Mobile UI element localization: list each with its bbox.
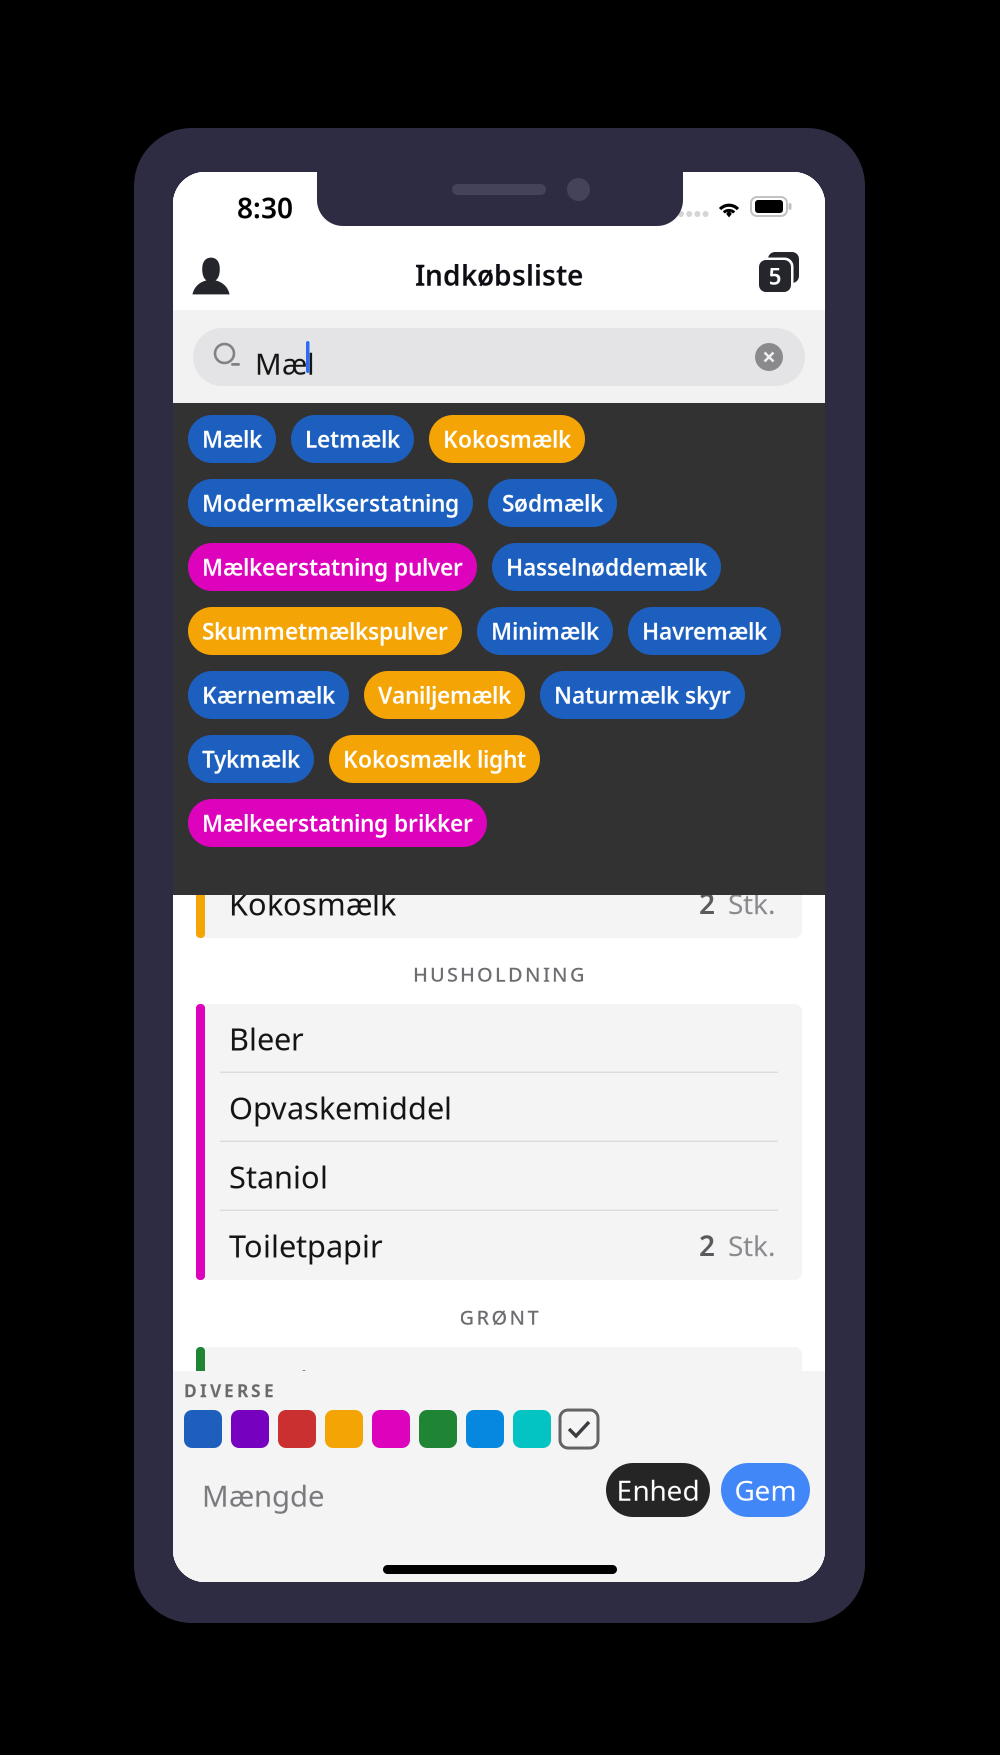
staticText: 5 — [768, 261, 781, 291]
button[interactable]: Mælkeerstatning brikker — [188, 799, 487, 847]
staticText: Kokosmælk — [443, 424, 571, 454]
staticText: Havremælk — [642, 616, 767, 646]
staticText: D I V E R S E — [184, 1379, 274, 1402]
staticText: Indkøbsliste — [415, 256, 583, 294]
button[interactable]: Farve — [466, 1410, 504, 1448]
staticText: Agurk — [229, 1361, 316, 1402]
staticText: K Ø L E V A R E R — [434, 391, 563, 417]
staticText: H U S H O L D N I N G — [413, 961, 585, 987]
staticText: Stk. — [728, 1227, 776, 1264]
staticText: Mælkeerstatning pulver — [202, 552, 463, 582]
button[interactable]: Naturmælk skyr — [540, 671, 745, 719]
button[interactable]: Vælg — [560, 1410, 598, 1448]
staticText: G R Ø N T — [459, 1304, 538, 1330]
button[interactable]: Farve — [184, 1410, 222, 1448]
button[interactable]: Hasselnøddemælk — [492, 543, 721, 591]
button[interactable]: Enhed — [606, 1463, 710, 1517]
staticText: Stk. — [728, 885, 776, 922]
staticText: K O L O N I A L — [440, 827, 557, 853]
staticText: Naturmælk skyr — [554, 680, 731, 710]
staticText: Tykmælk — [202, 744, 300, 774]
button[interactable]: Mælkeerstatning pulver — [188, 543, 477, 591]
staticText: 2 — [699, 885, 715, 922]
button[interactable]: Lister — [749, 242, 811, 304]
button[interactable]: Skummetmælkspulver — [188, 607, 462, 655]
staticText: Mælk — [229, 446, 307, 487]
button[interactable]: Modermælkserstatning — [188, 479, 473, 527]
staticText: Mælkeerstatning brikker — [202, 808, 473, 838]
button[interactable]: Kærnemælk — [188, 671, 349, 719]
staticText: Mængde — [202, 1476, 325, 1515]
staticText: Kokosmælk light — [343, 744, 526, 774]
staticText: Minimælk — [491, 616, 599, 646]
button[interactable]: Farve — [372, 1410, 410, 1448]
staticText: Kokosmælk — [229, 883, 396, 924]
staticText: Vaniljemælk — [378, 680, 511, 710]
staticText: Letmælk — [305, 424, 400, 454]
staticText: Hasselnøddemælk — [506, 552, 707, 582]
staticText: Bleer — [229, 1018, 304, 1059]
staticText: 2 — [699, 1227, 715, 1264]
staticText: Mæl — [255, 344, 315, 383]
button[interactable]: Farve — [419, 1410, 457, 1448]
staticText: Enhed — [616, 1471, 699, 1509]
staticText: Modermælkserstatning — [202, 488, 459, 518]
staticText: Mælk — [202, 424, 262, 454]
button[interactable]: Letmælk — [291, 415, 414, 463]
button[interactable]: Kokosmælk — [429, 415, 585, 463]
button[interactable]: Farve — [513, 1410, 551, 1448]
button[interactable]: Mælk — [188, 415, 276, 463]
staticText: Skummetmælkspulver — [202, 616, 448, 646]
staticText: Sødmælk — [502, 488, 603, 518]
button[interactable]: Tykmælk — [188, 735, 314, 783]
staticText: Gem — [734, 1471, 796, 1509]
button[interactable]: Minimælk — [477, 607, 613, 655]
button[interactable]: Farve — [278, 1410, 316, 1448]
staticText: Kærnemælk — [202, 680, 335, 710]
button[interactable]: Havremælk — [628, 607, 781, 655]
button[interactable]: Farve — [325, 1410, 363, 1448]
button[interactable]: Profil — [181, 246, 241, 306]
staticText: Staniol — [229, 1156, 328, 1197]
button[interactable]: Kokosmælk light — [329, 735, 540, 783]
button[interactable]: Gem — [721, 1463, 810, 1517]
button[interactable]: Vaniljemælk — [364, 671, 525, 719]
button[interactable]: Farve — [231, 1410, 269, 1448]
staticText: 8:30 — [237, 189, 293, 226]
button[interactable]: Sødmælk — [488, 479, 617, 527]
staticText: Toiletpapir — [229, 1225, 383, 1266]
staticText: Opvaskemiddel — [229, 1087, 452, 1128]
